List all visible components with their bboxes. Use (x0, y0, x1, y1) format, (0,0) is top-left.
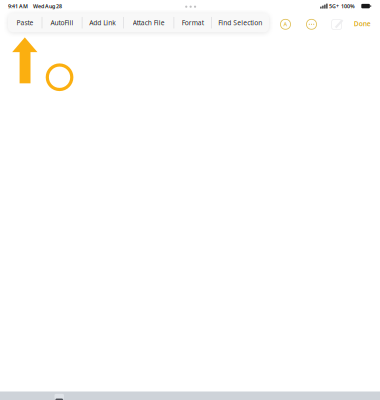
staticText: AutoFill (51, 18, 74, 27)
staticText: Format (182, 18, 204, 27)
staticText: 5G+ (329, 3, 339, 10)
button[interactable]: Find Selection (212, 13, 269, 32)
staticText: Wed Aug 28 (33, 3, 62, 10)
staticText: Attach File (133, 18, 165, 27)
staticText: A (283, 21, 287, 28)
staticText: Add Link (89, 18, 116, 27)
staticText: 100% (341, 3, 355, 10)
staticText: Done (354, 19, 371, 28)
button[interactable]: Add Link (82, 13, 123, 32)
button[interactable]: Done (344, 14, 371, 33)
staticText: Paste (16, 18, 33, 27)
button[interactable]: Compose (330, 17, 344, 31)
button[interactable]: Format (174, 13, 211, 32)
staticText: Find Selection (218, 18, 262, 27)
button[interactable]: Text formatting (278, 17, 292, 31)
button[interactable]: Attach File (124, 13, 174, 32)
staticText: 9:41 AM (8, 3, 28, 10)
button[interactable]: AutoFill (42, 13, 82, 32)
button[interactable]: Paste (8, 13, 42, 32)
button[interactable]: More (304, 17, 318, 31)
